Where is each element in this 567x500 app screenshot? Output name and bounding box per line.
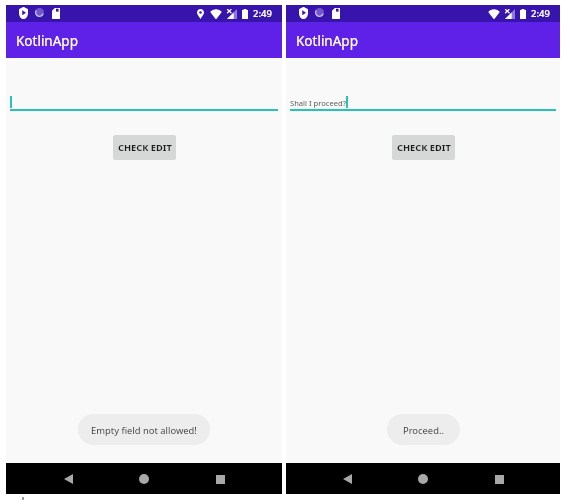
- staticText: Proceed..: [403, 424, 444, 437]
- staticText: 2:49: [253, 7, 272, 20]
- button[interactable]: CHECK EDIT: [113, 135, 176, 160]
- button[interactable]: Home: [410, 466, 436, 492]
- staticText: Empty field not allowed!: [91, 424, 197, 437]
- button[interactable]: Recents: [207, 466, 233, 492]
- staticText: KotlinApp: [296, 32, 358, 50]
- button[interactable]: Back: [55, 466, 81, 492]
- button[interactable]: Back: [334, 466, 360, 492]
- staticText: CHECK EDIT: [118, 141, 172, 154]
- button[interactable]: Home: [131, 466, 157, 492]
- staticText: 2:49: [531, 7, 550, 20]
- button[interactable]: CHECK EDIT: [392, 135, 455, 160]
- button[interactable]: Recents: [486, 466, 512, 492]
- staticText: Shall I proceed?: [290, 98, 346, 108]
- staticText: KotlinApp: [16, 32, 78, 50]
- staticText: CHECK EDIT: [397, 141, 451, 154]
